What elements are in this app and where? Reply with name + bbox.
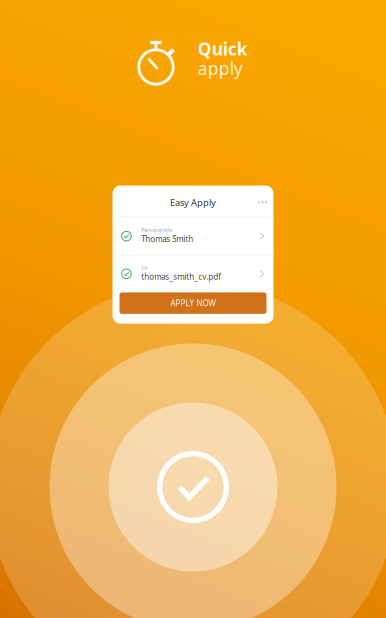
staticText: apply: [198, 57, 243, 80]
staticText: thomas_smith_cv.pdf: [141, 271, 221, 282]
staticText: Thomas Smith: [141, 233, 193, 244]
button[interactable]: APPLY NOW: [119, 292, 266, 314]
staticText: Personal info: [141, 226, 172, 233]
button[interactable]: CV: [112, 255, 273, 292]
staticText: Easy Apply: [170, 196, 216, 208]
button[interactable]: More options: [251, 192, 273, 212]
staticText: APPLY NOW: [170, 298, 215, 308]
button[interactable]: Personal info: [112, 218, 273, 255]
staticText: Quick: [198, 37, 248, 60]
staticText: CV: [141, 264, 147, 271]
